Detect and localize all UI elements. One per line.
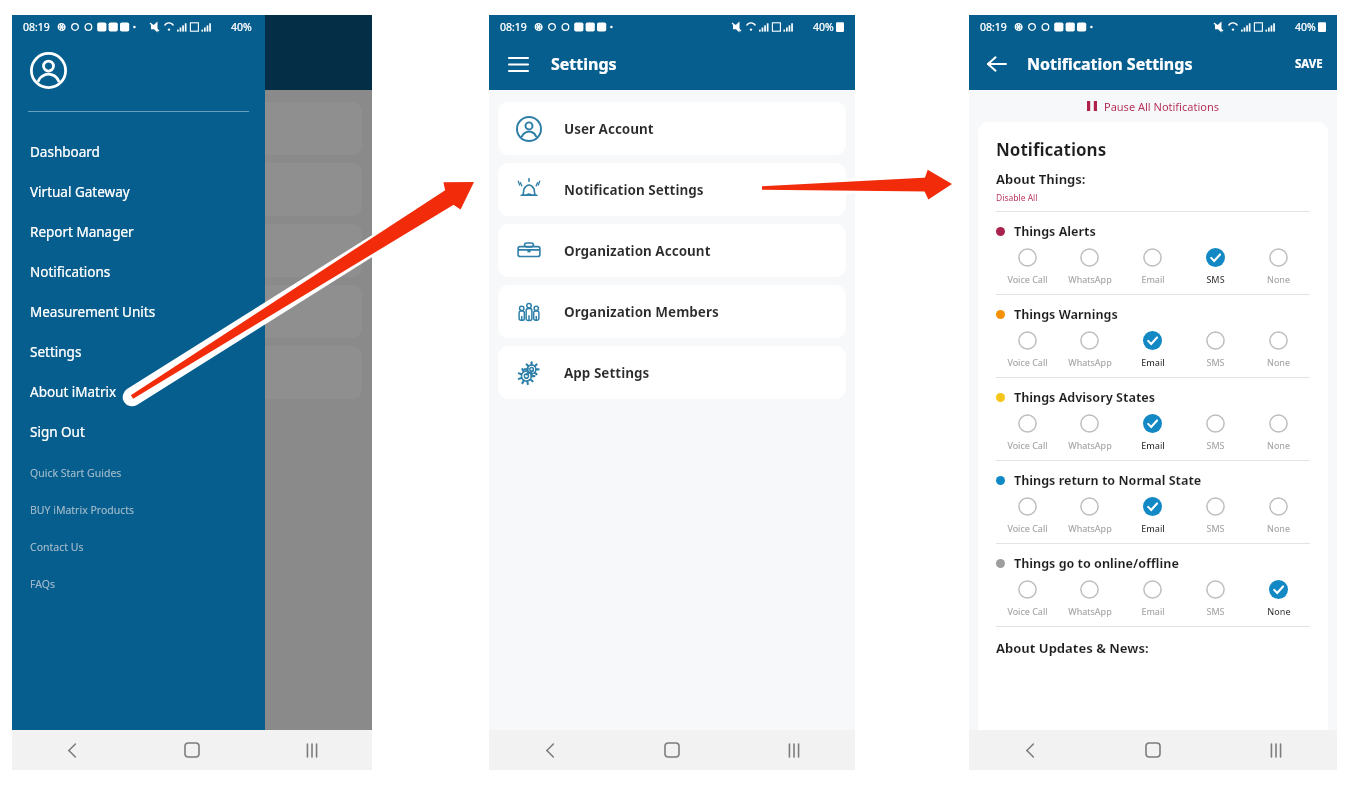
button[interactable]: Dashboard bbox=[12, 132, 265, 172]
button[interactable]: WhatsApp bbox=[1058, 580, 1121, 617]
button[interactable]: Back bbox=[981, 48, 1013, 80]
button[interactable]: Email bbox=[1121, 248, 1184, 285]
button[interactable]: App Settings bbox=[498, 346, 846, 399]
button[interactable]: WhatsApp bbox=[1058, 248, 1121, 285]
staticText: SMS bbox=[1206, 605, 1225, 617]
button[interactable]: Voice Call bbox=[996, 331, 1058, 368]
staticText: Email bbox=[1141, 522, 1165, 534]
button[interactable]: Email bbox=[1121, 580, 1184, 617]
staticText: About Things: bbox=[996, 170, 1086, 188]
button[interactable]: Home bbox=[132, 730, 252, 770]
button[interactable]: Voice Call bbox=[996, 580, 1058, 617]
button[interactable]: Email bbox=[1121, 331, 1184, 368]
staticText: 08:19 bbox=[500, 20, 527, 34]
staticText: Disable All bbox=[996, 192, 1038, 204]
staticText: Settings bbox=[30, 343, 82, 361]
staticText: Organization Account bbox=[564, 242, 711, 260]
staticText: Virtual Gateway bbox=[30, 183, 130, 201]
button[interactable]: Home bbox=[611, 730, 733, 770]
staticText: 40% bbox=[231, 20, 252, 34]
button[interactable]: About iMatrix bbox=[12, 372, 265, 412]
button[interactable]: WhatsApp bbox=[1058, 414, 1121, 451]
button[interactable]: Measurement Units bbox=[12, 292, 265, 332]
button[interactable]: Sign Out bbox=[12, 412, 265, 452]
staticText: SAVE bbox=[1295, 56, 1323, 72]
staticText: Measurement Units bbox=[30, 303, 156, 321]
staticText: Things go to online/offline bbox=[1014, 555, 1179, 572]
button[interactable]: SMS bbox=[1184, 497, 1247, 534]
staticText: 40% bbox=[813, 20, 834, 34]
button[interactable]: Email bbox=[1121, 497, 1184, 534]
button[interactable]: FAQs bbox=[12, 565, 265, 602]
staticText: SMS bbox=[1206, 273, 1225, 285]
button[interactable]: Open navigation menu bbox=[501, 47, 535, 81]
button[interactable]: SMS bbox=[1184, 580, 1247, 617]
staticText: Report Manager bbox=[30, 223, 134, 241]
staticText: Sign Out bbox=[30, 423, 85, 441]
staticText: WhatsApp bbox=[1068, 273, 1112, 285]
staticText: Notification Settings bbox=[564, 181, 704, 199]
button[interactable]: Virtual Gateway bbox=[12, 172, 265, 212]
button[interactable]: Report Manager bbox=[12, 212, 265, 252]
staticText: About Updates & News: bbox=[996, 639, 1149, 657]
staticText: Organization Members bbox=[564, 303, 719, 321]
staticText: BUY iMatrix Products bbox=[30, 503, 135, 517]
button[interactable]: SMS bbox=[1184, 248, 1247, 285]
button[interactable]: WhatsApp bbox=[1058, 331, 1121, 368]
staticText: Things Warnings bbox=[1014, 306, 1118, 323]
button[interactable]: Quick Start Guides bbox=[12, 454, 265, 491]
button[interactable]: SMS bbox=[1184, 331, 1247, 368]
button[interactable]: Pause All Notifications bbox=[969, 90, 1337, 122]
button[interactable]: Email bbox=[1121, 414, 1184, 451]
button[interactable]: Back bbox=[489, 730, 611, 770]
staticText: 08:19 bbox=[980, 20, 1007, 34]
button[interactable]: Disable All bbox=[996, 192, 1038, 204]
button[interactable]: None bbox=[1247, 331, 1310, 368]
staticText: App Settings bbox=[564, 364, 650, 382]
button[interactable]: User Account bbox=[498, 102, 846, 155]
button[interactable]: None bbox=[1247, 497, 1310, 534]
button[interactable]: None bbox=[1247, 248, 1310, 285]
staticText: WhatsApp bbox=[1068, 605, 1112, 617]
staticText: WhatsApp bbox=[1068, 439, 1112, 451]
button[interactable]: Settings bbox=[12, 332, 265, 372]
staticText: Contact Us bbox=[30, 540, 84, 554]
staticText: Voice Call bbox=[1007, 522, 1048, 534]
staticText: None bbox=[1267, 522, 1290, 534]
staticText: 40% bbox=[1295, 20, 1316, 34]
button[interactable]: Contact Us bbox=[12, 528, 265, 565]
button[interactable]: Notification Settings bbox=[498, 163, 846, 216]
staticText: WhatsApp bbox=[1068, 356, 1112, 368]
button[interactable]: Recent apps bbox=[733, 730, 855, 770]
button[interactable]: BUY iMatrix Products bbox=[12, 491, 265, 528]
staticText: None bbox=[1267, 439, 1290, 451]
button[interactable]: SAVE bbox=[1281, 48, 1337, 80]
staticText: Pause All Notifications bbox=[1104, 99, 1219, 114]
staticText: Voice Call bbox=[1007, 439, 1048, 451]
button[interactable]: Notifications bbox=[12, 252, 265, 292]
staticText: Email bbox=[1141, 273, 1165, 285]
button[interactable]: Voice Call bbox=[996, 248, 1058, 285]
staticText: 08:19 bbox=[23, 20, 50, 34]
staticText: About iMatrix bbox=[30, 383, 117, 401]
button[interactable]: Organization Account bbox=[498, 224, 846, 277]
button[interactable]: Organization Members bbox=[498, 285, 846, 338]
staticText: SMS bbox=[1206, 522, 1225, 534]
button[interactable]: None bbox=[1247, 580, 1310, 617]
button[interactable]: None bbox=[1247, 414, 1310, 451]
staticText: Voice Call bbox=[1007, 605, 1048, 617]
staticText: Email bbox=[1141, 605, 1165, 617]
staticText: Voice Call bbox=[1007, 273, 1048, 285]
button[interactable]: Home bbox=[1091, 730, 1214, 770]
button[interactable]: Voice Call bbox=[996, 414, 1058, 451]
staticText: Notifications bbox=[996, 138, 1107, 161]
staticText: SMS bbox=[1206, 439, 1225, 451]
button[interactable]: Back bbox=[12, 730, 132, 770]
staticText: Settings bbox=[551, 53, 617, 75]
button[interactable]: SMS bbox=[1184, 414, 1247, 451]
button[interactable]: Voice Call bbox=[996, 497, 1058, 534]
button[interactable]: Recent apps bbox=[252, 730, 372, 770]
button[interactable]: Recent apps bbox=[1214, 730, 1337, 770]
button[interactable]: WhatsApp bbox=[1058, 497, 1121, 534]
button[interactable]: Back bbox=[969, 730, 1091, 770]
